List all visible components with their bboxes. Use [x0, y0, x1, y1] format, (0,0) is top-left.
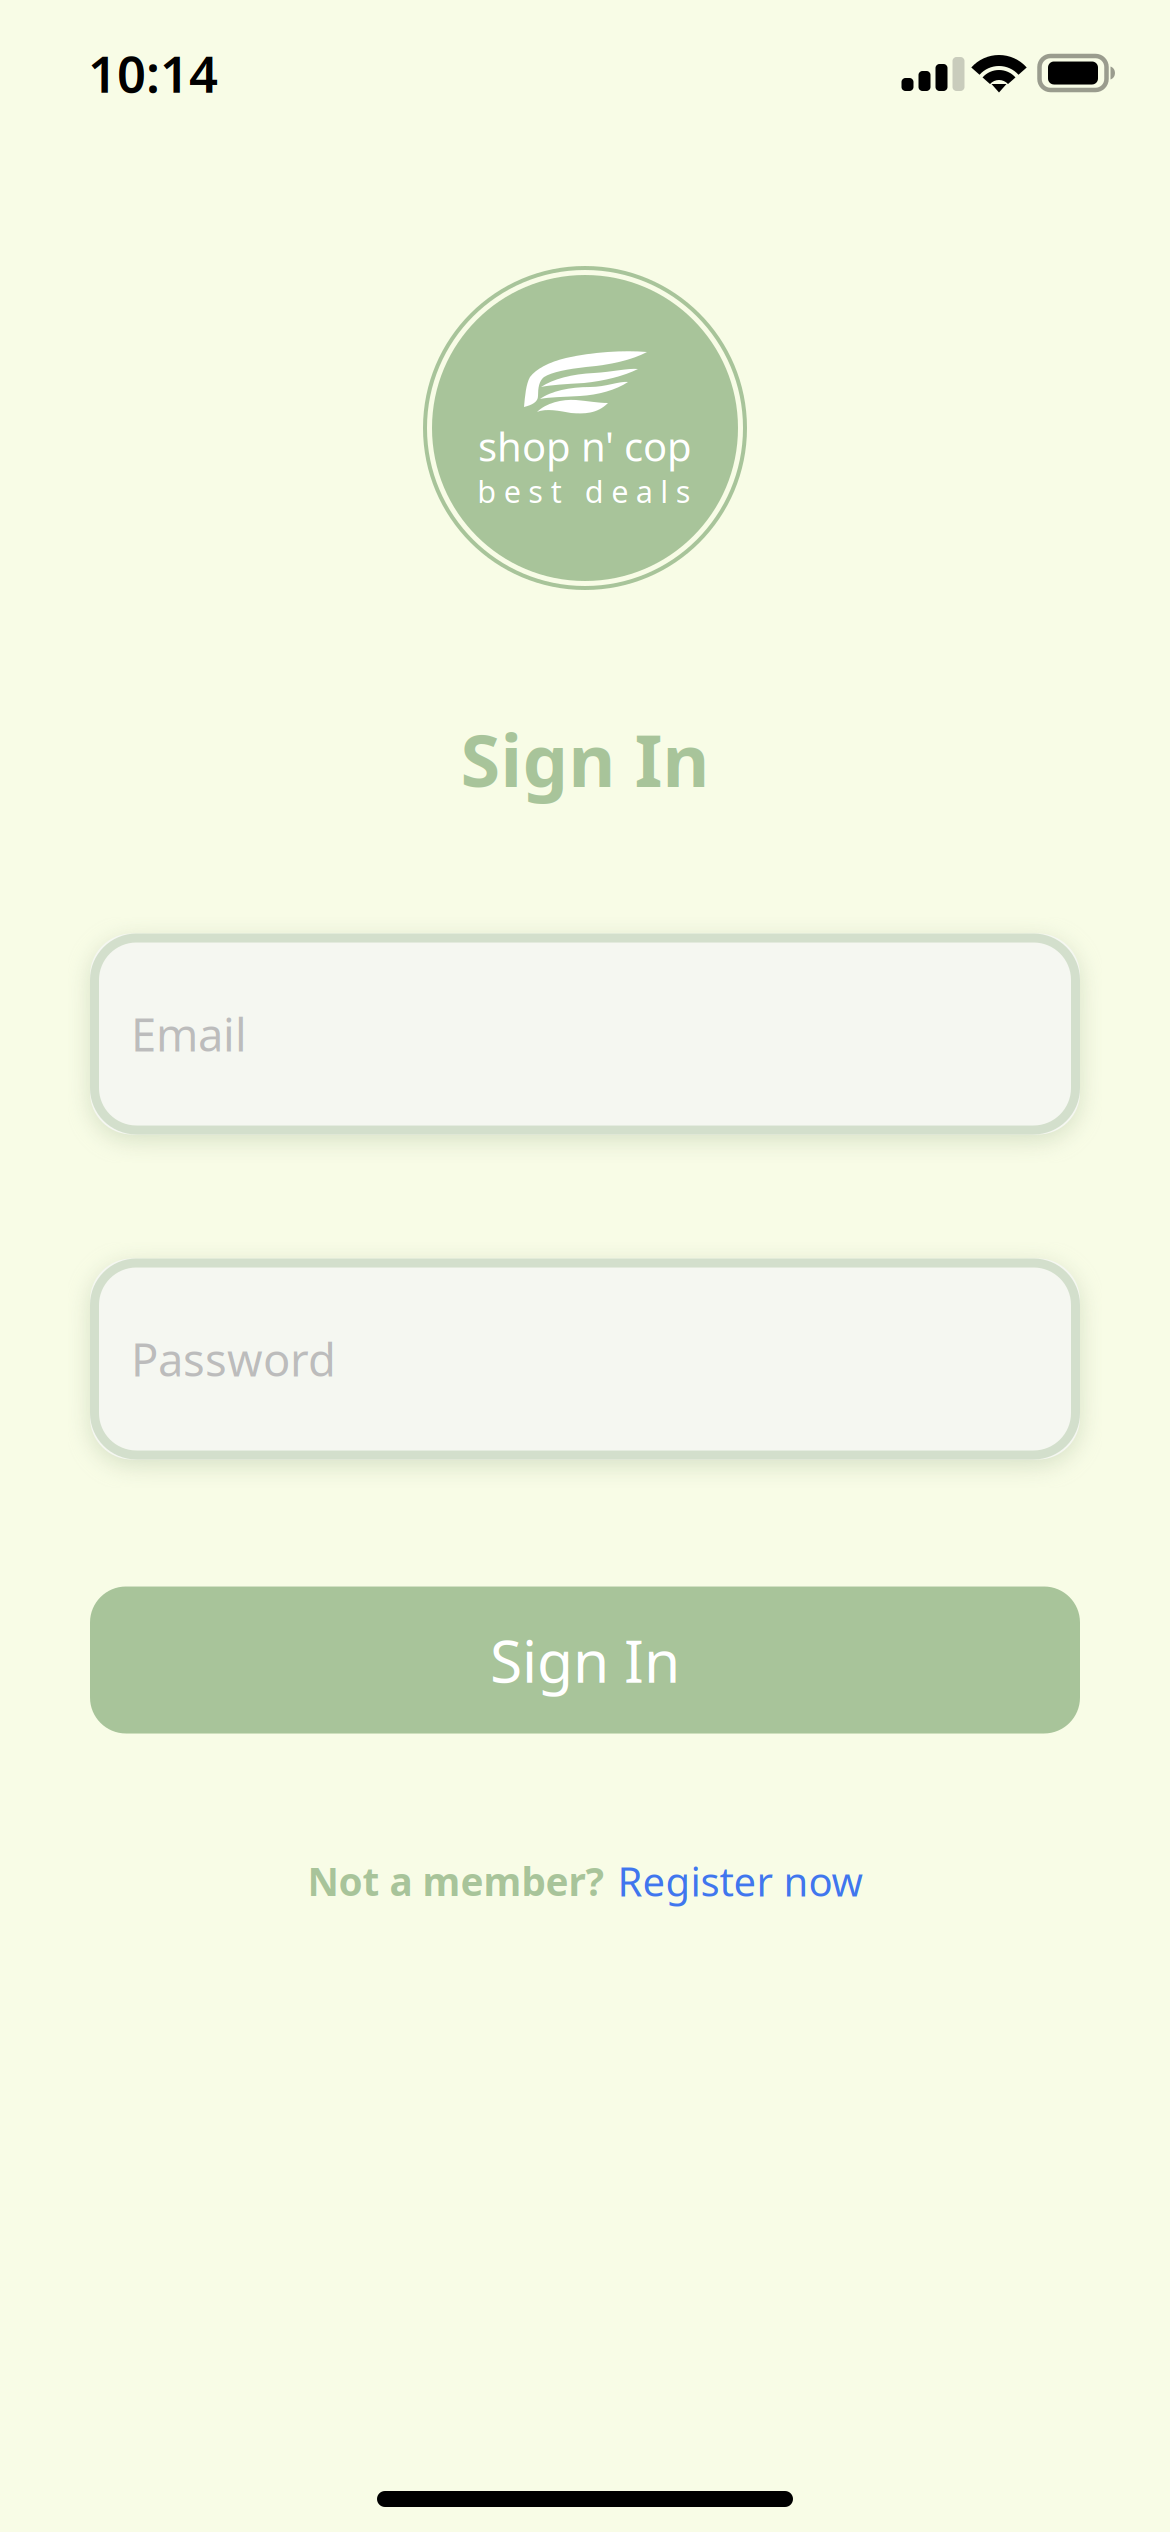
staticText: shop n' cop [478, 419, 692, 472]
staticText: Sign In [490, 1621, 680, 1699]
button[interactable]: Register now [617, 1854, 862, 1907]
button[interactable]: Email [90, 933, 1080, 1134]
staticText: Register now [617, 1854, 862, 1907]
staticText: Not a member? [307, 1855, 603, 1907]
button[interactable]: Sign In [90, 1586, 1080, 1733]
button[interactable]: Password [90, 1258, 1080, 1459]
staticText: Email [131, 1004, 247, 1064]
staticText: Password [131, 1329, 336, 1389]
staticText: 10:14 [88, 39, 218, 107]
staticText: best deals [477, 471, 691, 511]
staticText: Sign In [460, 711, 709, 807]
